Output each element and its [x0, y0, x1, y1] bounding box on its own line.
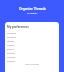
staticText: Organize Threads	[19, 7, 46, 11]
staticText: Muted	[7, 39, 15, 42]
staticText: Display	[7, 59, 16, 62]
staticText: Threads	[7, 31, 17, 34]
staticText: My preferences	[7, 25, 29, 29]
button[interactable]: Senders	[7, 34, 57, 38]
button[interactable]: Pinned	[7, 50, 57, 54]
button[interactable]: My preferences	[7, 25, 57, 29]
staticText: Pinned	[7, 51, 15, 54]
staticText: Archive	[7, 55, 16, 58]
button[interactable]: Archive	[7, 54, 57, 58]
staticText: Senders	[7, 35, 17, 38]
button[interactable]: Labels	[7, 42, 57, 46]
staticText: Labels	[7, 43, 15, 46]
staticText: Save changes	[25, 63, 39, 66]
button[interactable]: Threads	[7, 30, 57, 34]
button[interactable]: Muted	[7, 38, 57, 42]
staticText: for experts	[27, 12, 38, 15]
button[interactable]: Filters	[7, 46, 57, 50]
button[interactable]: Display	[7, 58, 57, 62]
staticText: Filters	[7, 47, 14, 50]
button[interactable]: Save changes	[7, 63, 57, 66]
